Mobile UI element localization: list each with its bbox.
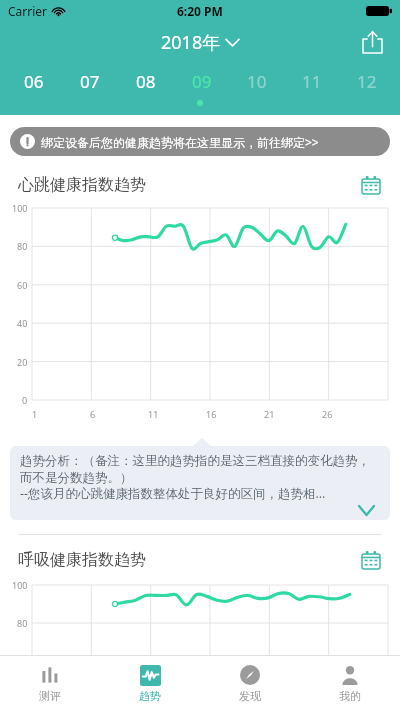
button[interactable]: 测评 [0, 656, 100, 711]
button[interactable]: 发现 [200, 656, 300, 711]
button[interactable]: 07 [62, 62, 118, 100]
staticText: 我的 [339, 689, 361, 703]
staticText: 11 [148, 408, 159, 420]
staticText: 发现 [239, 689, 261, 703]
button[interactable]: 11 [284, 62, 339, 100]
staticText: 60 [17, 655, 28, 667]
button[interactable]: 我的 [300, 656, 400, 711]
other: Expand [359, 506, 374, 515]
staticText: 趋势 [139, 689, 161, 703]
staticText: 心跳健康指数趋势 [18, 175, 146, 195]
staticText: 绑定设备后您的健康趋势将在这里显示，前往绑定>> [41, 134, 319, 150]
staticText: 09 [192, 70, 212, 93]
button[interactable]: Select date [356, 545, 386, 575]
staticText: 趋势分析：（备注：这里的趋势指的是这三档直接的变化趋势，而不是分数趋势。） [20, 453, 380, 485]
button[interactable]: 08 [118, 62, 174, 100]
staticText: 80 [17, 240, 28, 252]
staticText: 12 [357, 70, 377, 93]
staticText: 60 [17, 279, 28, 291]
staticText: 20 [17, 356, 28, 368]
staticText: 06 [24, 70, 44, 93]
staticText: 100 [12, 202, 28, 214]
staticText: 07 [80, 70, 100, 93]
staticText: 80 [17, 617, 28, 629]
button[interactable]: Share [354, 24, 390, 60]
staticText: --您该月的心跳健康指数整体处于良好的区间，趋势相… [20, 485, 326, 502]
staticText: 26 [322, 408, 333, 420]
button[interactable]: 2018年 [161, 30, 239, 55]
staticText: 6 [90, 408, 96, 420]
staticText: 1 [32, 408, 38, 420]
staticText: 16 [206, 408, 217, 420]
button[interactable]: 06 [6, 62, 62, 100]
staticText: 2018年 [161, 30, 221, 55]
button[interactable]: Select date [356, 170, 386, 200]
staticText: 40 [17, 317, 28, 329]
staticText: 11 [302, 70, 322, 93]
staticText: 21 [264, 408, 275, 420]
button[interactable]: 趋势分析：（备注：这里的趋势指的是这三档直接的变化趋势，而不是分数趋势。） [10, 446, 390, 520]
staticText: 6:20 PM [177, 3, 223, 19]
staticText: 呼吸健康指数趋势 [18, 550, 146, 570]
staticText: 10 [247, 70, 267, 93]
button[interactable]: 09 [174, 62, 229, 100]
button[interactable]: 绑定设备后您的健康趋势将在这里显示，前往绑定>> [10, 127, 390, 156]
staticText: 测评 [39, 689, 61, 703]
staticText: 08 [136, 70, 156, 93]
button[interactable]: 10 [229, 62, 284, 100]
button[interactable]: 12 [339, 62, 394, 100]
button[interactable]: 趋势 [100, 656, 200, 711]
staticText: 0 [22, 394, 28, 406]
staticText: Carrier [8, 3, 48, 19]
staticText: 100 [12, 579, 28, 591]
